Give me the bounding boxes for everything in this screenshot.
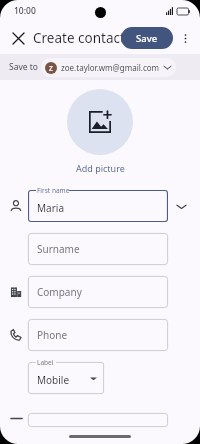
staticText: Save bbox=[136, 32, 158, 45]
staticText: Create contact bbox=[33, 29, 125, 47]
button[interactable]: Save bbox=[121, 27, 173, 49]
staticText: Mobile bbox=[37, 373, 70, 387]
staticText: 10:00 bbox=[14, 5, 36, 17]
button[interactable]: First name bbox=[28, 190, 168, 222]
staticText: Add picture bbox=[76, 162, 125, 174]
button[interactable]: More options bbox=[174, 27, 196, 49]
staticText: Z bbox=[49, 64, 53, 73]
button[interactable]: Surname bbox=[28, 233, 168, 265]
button[interactable]: Expand name fields bbox=[173, 198, 189, 214]
button[interactable]: Z bbox=[41, 58, 176, 77]
button[interactable] bbox=[28, 413, 168, 427]
staticText: Surname bbox=[37, 242, 80, 256]
staticText: Save to bbox=[9, 61, 38, 73]
staticText: Phone bbox=[37, 328, 68, 342]
staticText: zoe.taylor.wm@gmail.com bbox=[61, 62, 160, 73]
button[interactable]: Company bbox=[28, 276, 168, 308]
button[interactable]: Label bbox=[28, 362, 104, 394]
staticText: Label bbox=[37, 358, 54, 367]
button[interactable]: Add picture bbox=[67, 89, 133, 155]
button[interactable]: Phone bbox=[28, 319, 168, 351]
staticText: Company bbox=[37, 285, 82, 299]
button[interactable]: Close bbox=[5, 25, 31, 51]
staticText: Maria bbox=[37, 201, 64, 215]
staticText: First name bbox=[37, 186, 70, 195]
